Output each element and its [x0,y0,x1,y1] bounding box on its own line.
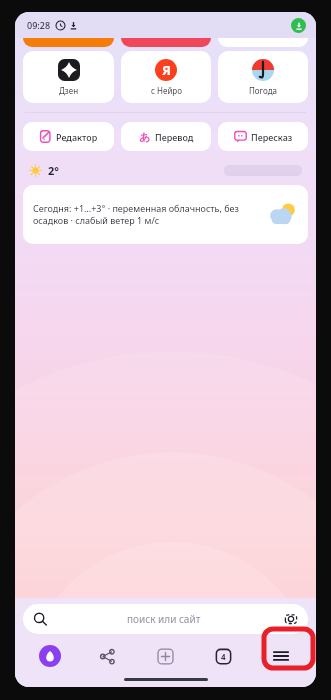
button[interactable]: Download [291,18,306,33]
staticText: Сегодня: +1…+3° · переменная облачность,… [33,202,250,227]
button[interactable] [218,38,308,47]
button[interactable]: あ [121,122,211,151]
button[interactable]: Сегодня: +1…+3° · переменная облачность,… [23,185,308,244]
button[interactable]: Share [78,641,136,671]
button[interactable] [121,38,211,47]
staticText: 2° [48,163,59,178]
button[interactable]: Search by image [282,610,300,628]
staticText: Я [162,61,171,79]
staticText: 4 [221,651,226,662]
button[interactable]: Пересказ [218,122,308,151]
staticText: 09:28 [27,19,51,31]
button[interactable]: поиск или сайт [23,604,308,634]
button[interactable]: Погода [218,51,308,103]
button[interactable]: Дзен [23,51,114,103]
staticText: Перевод [155,131,194,143]
button[interactable]: 2° [29,163,59,178]
button[interactable] [23,38,114,47]
button[interactable]: Я [121,51,211,103]
staticText: Дзен [59,85,79,96]
staticText: Пересказ [251,131,293,143]
button[interactable]: New tab [136,641,194,671]
staticText: Погода [249,85,278,96]
staticText: поиск или сайт [127,612,201,626]
button[interactable]: Alice assistant [21,641,78,671]
button[interactable]: Menu [252,641,310,671]
staticText: с Нейро [151,85,182,96]
staticText: Редактор [56,131,98,143]
button[interactable]: Tabs, 4 open [194,641,252,671]
staticText: あ [139,130,151,143]
button[interactable]: Редактор [23,122,114,151]
